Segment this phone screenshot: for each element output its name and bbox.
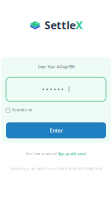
- staticText: Don't have an account?: [26, 152, 57, 156]
- staticText: By signing in, you agree to our Terms of…: [10, 167, 101, 170]
- staticText: Enter: [49, 127, 62, 134]
- staticText: Sign up with email: [58, 152, 86, 156]
- staticText: Settle: [44, 18, 75, 32]
- button[interactable]: Sign up with email: [58, 152, 86, 156]
- staticText: X: [75, 18, 82, 32]
- staticText: Remember me: [12, 108, 32, 112]
- staticText: Enter Your 4-Digit PIN: [37, 64, 74, 69]
- button[interactable]: Enter: [6, 122, 106, 138]
- button[interactable]: Remember me: [6, 108, 32, 112]
